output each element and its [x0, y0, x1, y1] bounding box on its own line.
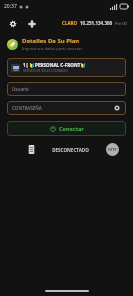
- button[interactable]: Settings: [6, 17, 19, 30]
- staticText: Conectar: [59, 125, 84, 132]
- button[interactable]: Log: [28, 145, 35, 154]
- button[interactable]: CONTRASEÑA: [7, 101, 126, 115]
- staticText: CONTRASEÑA: [12, 105, 42, 111]
- staticText: Ingresa sus datos para conectar: [22, 46, 83, 51]
- button[interactable]: Detalles De Su Plan: [7, 37, 126, 51]
- staticText: CLARO: [62, 20, 78, 26]
- staticText: Pre 00: [115, 21, 127, 26]
- staticText: Detalles De Su Plan: [22, 37, 80, 45]
- button[interactable]: Conectar: [7, 121, 126, 136]
- button[interactable]: 1| 🔰PERSONAL C-FRONT🔰: [7, 58, 126, 77]
- button[interactable]: Show password: [113, 104, 121, 112]
- staticText: 20:37: [4, 3, 17, 10]
- button[interactable]: HTTP: [106, 143, 119, 156]
- staticText: HTTP: [108, 147, 117, 152]
- button[interactable]: Usuario: [7, 82, 126, 96]
- staticText: Usuario: [12, 86, 29, 92]
- button[interactable]: Network: [25, 17, 38, 30]
- staticText: 1| 🔰PERSONAL C-FRONT🔰: [23, 62, 87, 68]
- staticText: 10.251.134.300: [80, 20, 113, 26]
- staticText: SERVIDOR SELECCIONADO: [23, 68, 68, 73]
- staticText: DESCONECTADO: [52, 147, 89, 153]
